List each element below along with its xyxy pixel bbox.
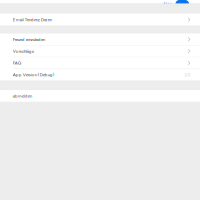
- staticText: Aktiv: [163, 1, 173, 6]
- staticText: Email Tendenz Daten: [13, 17, 52, 22]
- button[interactable]: Email Tendenz Daten: [0, 14, 200, 25]
- button[interactable]: abmelden: [0, 90, 200, 101]
- staticText: Freund einzuladen: [13, 37, 45, 42]
- staticText: App Version (Debug): [13, 72, 55, 77]
- staticText: abmelden: [13, 93, 32, 98]
- button[interactable]: FAQ: [0, 57, 200, 69]
- staticText: 2.0: [184, 72, 190, 77]
- button[interactable]: App Version (Debug): [0, 69, 200, 80]
- staticText: FAQ: [13, 60, 21, 66]
- button[interactable]: Freund einzuladen: [0, 34, 200, 45]
- button[interactable]: Benachrichtigungen: [163, 0, 200, 7]
- staticText: Vorschläge: [13, 48, 34, 54]
- button[interactable]: Vorschläge: [0, 45, 200, 57]
